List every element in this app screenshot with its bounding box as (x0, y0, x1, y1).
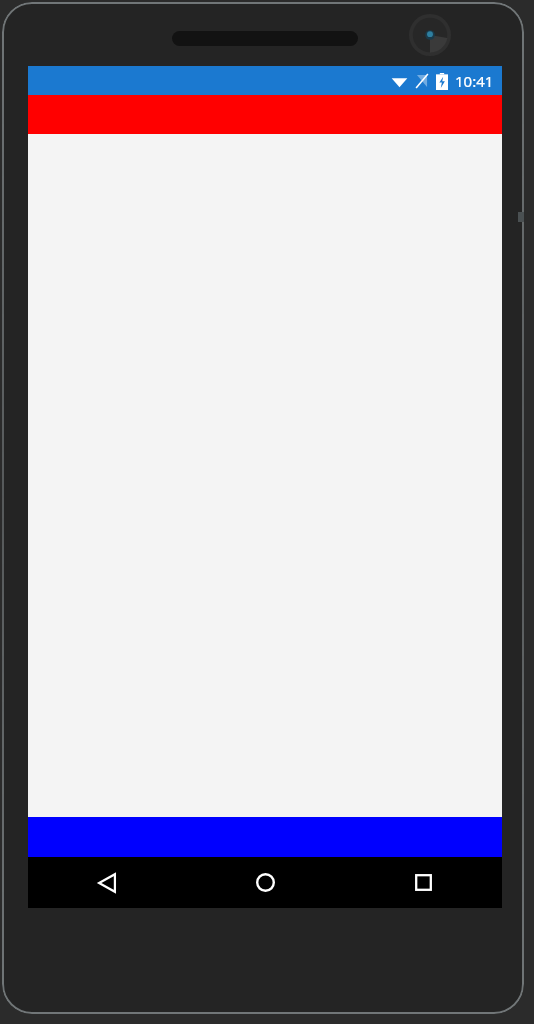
button[interactable]: Recent apps (344, 857, 502, 908)
staticText: 10:41 (455, 71, 494, 91)
button[interactable]: Home (186, 857, 344, 908)
button[interactable]: Back (28, 857, 186, 908)
